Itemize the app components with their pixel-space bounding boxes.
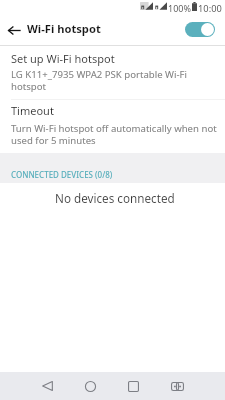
staticText: Wi-Fi hotspot [27, 21, 101, 36]
staticText: No devices connected [55, 190, 175, 206]
staticText: 100% [168, 2, 191, 14]
staticText: CONNECTED DEVICES (0/8) [11, 169, 113, 180]
button[interactable]: Back [4, 16, 24, 45]
staticText: 10:00 [198, 2, 222, 15]
button[interactable]: Set up Wi-Fi hotspot [0, 46, 225, 99]
button[interactable]: Back [33, 372, 61, 400]
button[interactable]: Timeout [0, 100, 225, 152]
button[interactable]: Capture plus [163, 372, 191, 400]
button[interactable]: Recents [119, 372, 147, 400]
staticText: Turn Wi-Fi hotspot off automatically whe… [11, 122, 219, 147]
staticText: Set up Wi-Fi hotspot [11, 51, 115, 66]
staticText: LG K11+_7935 WPA2 PSK portable Wi-Fi hot… [11, 68, 219, 93]
staticText: Timeout [11, 103, 54, 118]
button[interactable]: Hotspot on/off [185, 21, 216, 37]
button[interactable]: Home [76, 372, 104, 400]
